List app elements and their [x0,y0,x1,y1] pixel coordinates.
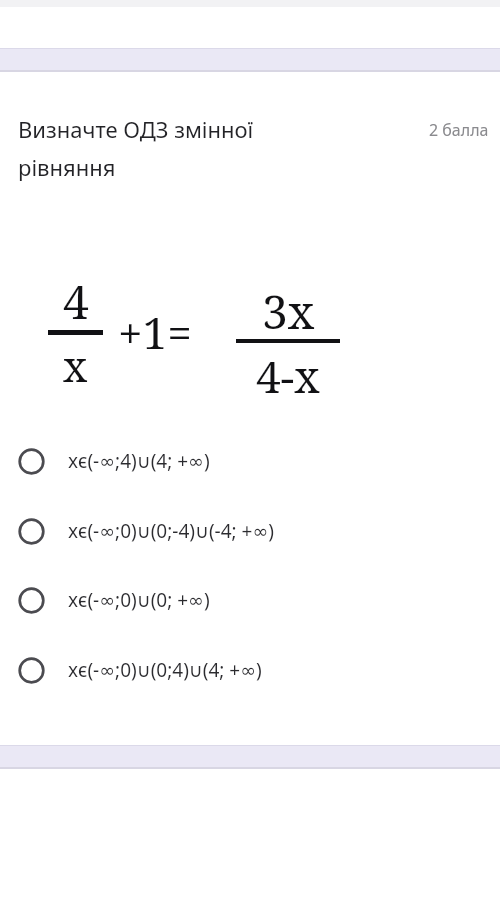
button[interactable]: xє(-∞;0)∪(0; +∞) [0,578,500,622]
staticText: x [63,337,88,394]
staticText: xє(-∞;0)∪(0;4)∪(4; +∞) [68,657,262,683]
staticText: +1= [118,302,192,362]
button[interactable]: xє(-∞;4)∪(4; +∞) [0,439,500,483]
staticText: xє(-∞;0)∪(0; +∞) [68,587,210,613]
button[interactable]: xє(-∞;0)∪(0;4)∪(4; +∞) [0,648,500,692]
staticText: 2 балла [429,119,489,141]
staticText: 4 [63,270,89,333]
button[interactable]: xє(-∞;0)∪(0;-4)∪(-4; +∞) [0,509,500,553]
staticText: 4-x [256,346,320,406]
staticText: 3x [262,280,315,343]
staticText: xє(-∞;0)∪(0;-4)∪(-4; +∞) [68,518,274,544]
staticText: Визначте ОДЗ змінної рівняння [18,114,254,182]
staticText: xє(-∞;4)∪(4; +∞) [68,448,210,474]
